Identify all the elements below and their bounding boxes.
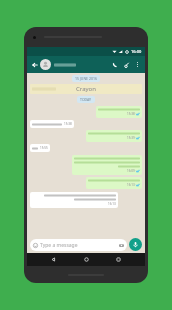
button[interactable]: Back — [47, 253, 60, 266]
staticText: 16:13 — [108, 202, 116, 206]
staticText: 16:09 — [127, 169, 135, 173]
staticText: 15:38 — [64, 122, 72, 126]
button[interactable]: 16:13 — [86, 177, 142, 189]
staticText: 16:00 — [131, 49, 142, 54]
button[interactable]: Recents — [112, 253, 125, 266]
button[interactable]: Voice message — [129, 238, 142, 251]
button[interactable]: Attach — [122, 60, 132, 70]
staticText: Type a message — [40, 242, 78, 249]
staticText: 16:13 — [127, 183, 135, 187]
button[interactable]: 15:38 — [96, 106, 142, 118]
button[interactable]: 15:38 — [30, 120, 74, 128]
staticText: Crayon — [76, 85, 96, 93]
button[interactable]: 15:39 — [86, 130, 142, 142]
button[interactable]: Call — [110, 60, 120, 70]
staticText: 15:39 — [127, 136, 135, 140]
button[interactable]: More options — [133, 60, 142, 69]
staticText: 15:38 — [127, 112, 135, 116]
button[interactable]: Type a message — [30, 239, 127, 251]
staticText: 15 JUNE 2016 — [75, 76, 97, 81]
button[interactable] — [40, 56, 110, 73]
button[interactable]: 16:13 — [30, 192, 118, 208]
staticText: TODAY — [80, 97, 92, 102]
staticText: 15:55 — [40, 146, 48, 150]
button[interactable]: Back — [30, 60, 39, 69]
button[interactable]: 15:55 — [30, 144, 50, 152]
button[interactable]: Home — [80, 253, 93, 266]
button[interactable]: 16:09 — [72, 155, 142, 175]
